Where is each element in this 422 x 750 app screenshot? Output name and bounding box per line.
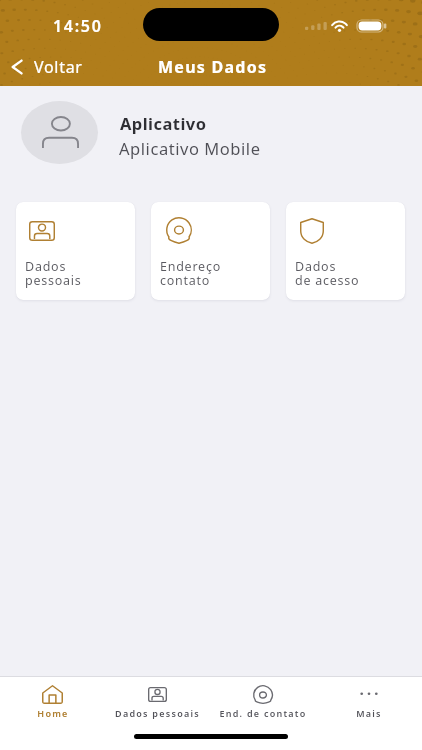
staticText: Dados de acesso: [295, 258, 360, 289]
staticText: Voltar: [34, 56, 83, 78]
button[interactable]: Dados pessoais: [16, 202, 135, 300]
staticText: Meus Dados: [158, 56, 268, 78]
staticText: Mais: [356, 707, 382, 719]
staticText: Aplicativo Mobile: [119, 137, 261, 159]
staticText: Home: [37, 707, 69, 719]
staticText: Endereço contato: [160, 258, 221, 289]
button[interactable]: Home: [0, 681, 105, 724]
staticText: Dados pessoais: [115, 707, 200, 719]
button[interactable]: Endereço contato: [151, 202, 270, 300]
staticText: Aplicativo: [120, 112, 207, 134]
staticText: 14:50: [53, 15, 103, 37]
button[interactable]: Voltar: [5, 51, 93, 83]
button[interactable]: Dados pessoais: [105, 681, 210, 724]
button[interactable]: End. de contato: [210, 681, 316, 724]
button[interactable]: Dados de acesso: [286, 202, 405, 300]
button[interactable]: Mais: [316, 681, 422, 724]
staticText: Dados pessoais: [25, 258, 82, 289]
staticText: End. de contato: [219, 707, 307, 719]
